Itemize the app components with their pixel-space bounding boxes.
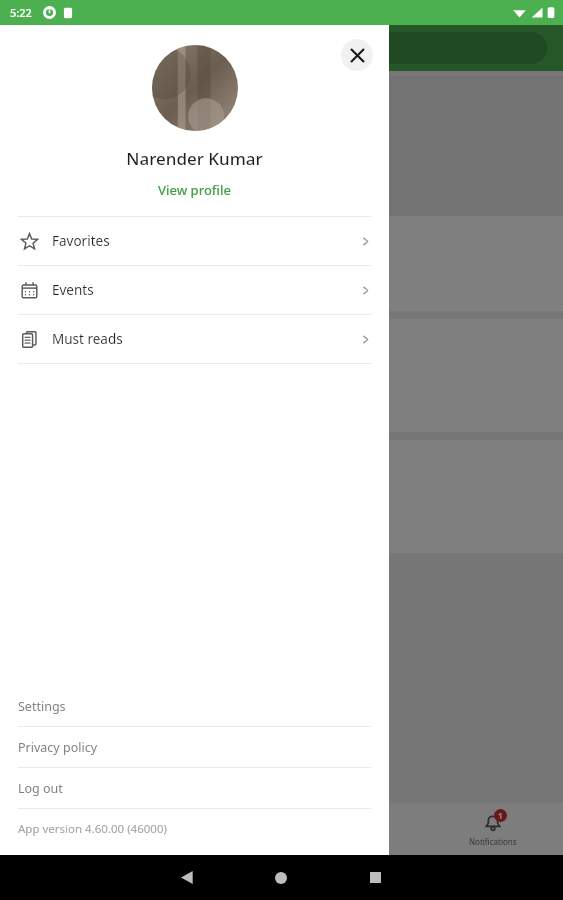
staticText: on Aug 23, 2022 — [125, 362, 216, 378]
button[interactable]: Diversity and Inclusion Committee - Join… — [0, 319, 563, 432]
staticText: App version 4.60.00 (46000) — [18, 821, 167, 837]
staticText: Favorites — [52, 232, 110, 250]
staticText: Diversity and Inclusion Committee - Join… — [14, 228, 185, 272]
button[interactable]: Must reads — [0, 315, 389, 363]
button[interactable]: Diversity and Inclusion Committee - Join… — [0, 76, 563, 311]
button[interactable]: Favorites — [0, 217, 389, 265]
button[interactable]: Stories — [281, 803, 422, 855]
button[interactable]: Privacy policy — [0, 727, 389, 767]
staticText: Must reads — [52, 330, 123, 348]
staticText: Narender Kumar — [0, 147, 389, 170]
button[interactable]: Events — [0, 266, 389, 314]
button[interactable]: Settings — [0, 686, 389, 726]
other: Notifications — [482, 811, 504, 833]
button[interactable]: Notifications — [422, 803, 563, 855]
button[interactable]: Search — [140, 803, 281, 855]
other: Home — [275, 872, 287, 884]
staticText: Diversity & Inclusion — [14, 281, 125, 297]
button[interactable]: Profile photo — [152, 45, 238, 131]
staticText: 1 — [498, 810, 503, 821]
other: Back — [181, 871, 194, 884]
staticText: Events — [52, 281, 94, 299]
staticText: Diversity & Inclusion — [14, 362, 125, 378]
staticText: Diversity and Inclusion Committee - Join… — [14, 331, 357, 353]
staticText: 5:22 — [10, 5, 32, 20]
staticText: View profile — [158, 181, 231, 199]
button[interactable]: Close — [341, 39, 373, 71]
button[interactable]: Respect in the Workplace — [0, 440, 563, 553]
button[interactable] — [16, 32, 547, 64]
button[interactable]: View profile — [148, 179, 241, 201]
staticText: Settings — [18, 698, 66, 715]
staticText: Privacy policy — [18, 739, 98, 756]
button[interactable]: Log out — [0, 768, 389, 808]
button[interactable]: Home — [0, 803, 140, 855]
staticText: Log out — [18, 780, 63, 797]
staticText: Notifications — [469, 836, 517, 847]
